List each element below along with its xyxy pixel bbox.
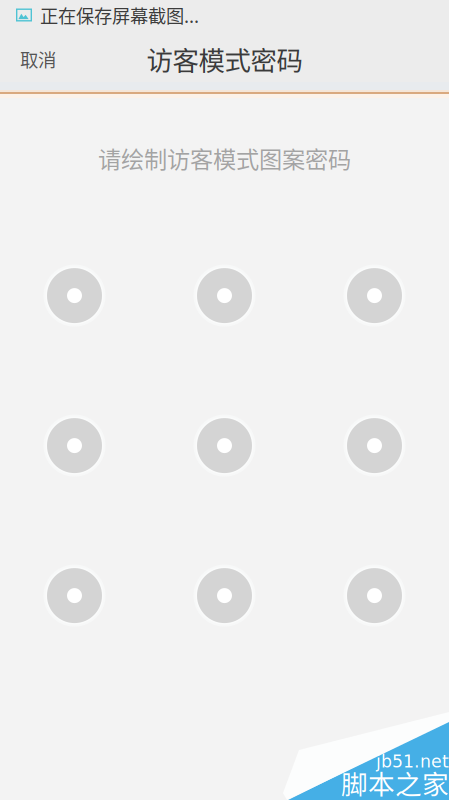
button[interactable]: 图案节点 7 (43, 565, 105, 627)
button[interactable]: 图案节点 6 (343, 415, 405, 477)
button[interactable]: 图案节点 9 (343, 565, 405, 627)
staticText: 访客模式密码 (146, 40, 302, 78)
staticText: 请绘制访客模式图案密码 (98, 141, 351, 175)
staticText: jb51.net (376, 751, 449, 772)
staticText: 正在保存屏幕截图... (40, 2, 199, 28)
button[interactable]: 图案节点 2 (193, 265, 255, 327)
staticText: 取消 (20, 46, 56, 72)
button[interactable]: 图案节点 1 (43, 265, 105, 327)
staticText: 脚本之家 (341, 763, 449, 800)
button[interactable]: 图案节点 4 (43, 415, 105, 477)
button[interactable]: 图案节点 3 (343, 265, 405, 327)
button[interactable]: 图案节点 8 (193, 565, 255, 627)
button[interactable]: 图案节点 5 (193, 415, 255, 477)
button[interactable]: 取消 (0, 30, 76, 82)
